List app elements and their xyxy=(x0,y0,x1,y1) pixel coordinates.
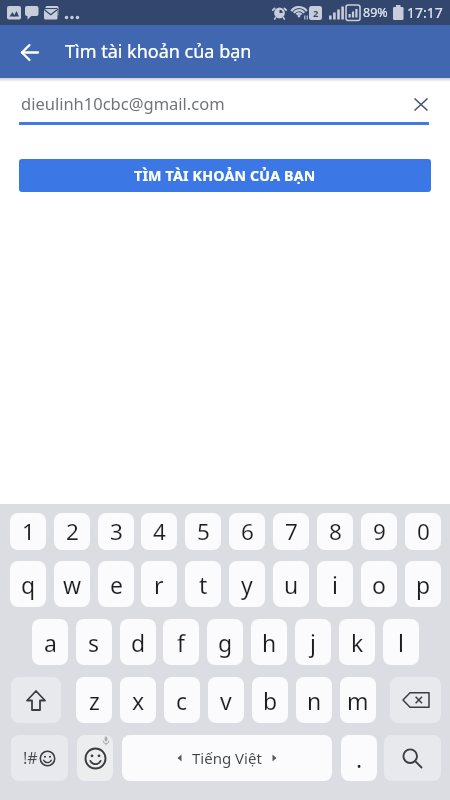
staticText: 17:17 xyxy=(407,3,443,22)
staticText: !# xyxy=(23,747,38,769)
button[interactable]: 9 xyxy=(361,513,397,550)
button[interactable]: u xyxy=(273,561,309,607)
staticText: TÌM TÀI KHOẢN CỦA BẠN xyxy=(134,166,316,185)
staticText: 4 xyxy=(153,516,166,547)
staticText: 89% xyxy=(363,4,388,21)
button[interactable]: TÌM TÀI KHOẢN CỦA BẠN xyxy=(19,159,431,192)
button[interactable]: w xyxy=(54,561,90,607)
button[interactable]: Tiếng Việt xyxy=(122,735,332,781)
button[interactable]: n xyxy=(296,677,332,723)
staticText: 9 xyxy=(373,516,386,547)
button[interactable] xyxy=(390,677,441,723)
staticText: o xyxy=(372,569,386,600)
staticText: e xyxy=(110,569,123,600)
staticText: u xyxy=(284,569,299,600)
button[interactable]: z xyxy=(76,677,112,723)
staticText: p xyxy=(416,569,431,600)
staticText: t xyxy=(199,569,208,600)
staticText: n xyxy=(307,685,322,716)
button[interactable] xyxy=(384,735,441,781)
button[interactable]: 2 xyxy=(54,513,90,550)
staticText: r xyxy=(154,569,164,600)
button[interactable]: . xyxy=(341,735,377,781)
staticText: i xyxy=(332,569,338,600)
staticText: 0 xyxy=(417,516,430,547)
button[interactable]: p xyxy=(405,561,441,607)
button[interactable] xyxy=(405,88,437,120)
staticText: Tiếng Việt xyxy=(192,748,262,768)
button[interactable]: c xyxy=(164,677,200,723)
button[interactable] xyxy=(11,677,61,723)
button[interactable]: e xyxy=(98,561,134,607)
staticText: v xyxy=(220,685,232,716)
button[interactable]: o xyxy=(361,561,397,607)
button[interactable]: 6 xyxy=(229,513,265,550)
staticText: dieulinh10cbc@gmail.com xyxy=(21,92,225,114)
staticText: b xyxy=(263,685,278,716)
button[interactable]: 5 xyxy=(185,513,221,550)
button[interactable]: x xyxy=(120,677,156,723)
staticText: 3 xyxy=(110,516,123,547)
staticText: w xyxy=(63,569,82,600)
staticText: k xyxy=(351,627,364,658)
staticText: 7 xyxy=(285,516,298,547)
button[interactable]: a xyxy=(32,619,68,665)
button[interactable]: !# xyxy=(11,735,68,781)
button[interactable]: d xyxy=(120,619,156,665)
staticText: 1 xyxy=(22,516,35,547)
button[interactable] xyxy=(77,735,113,781)
staticText: j xyxy=(310,627,316,658)
button[interactable]: 1 xyxy=(10,513,46,550)
button[interactable]: f xyxy=(163,619,199,665)
button[interactable]: 8 xyxy=(317,513,353,550)
staticText: 5 xyxy=(197,516,210,547)
staticText: y xyxy=(241,569,253,600)
staticText: 6 xyxy=(241,516,254,547)
button[interactable] xyxy=(10,35,50,69)
button[interactable]: 3 xyxy=(98,513,134,550)
staticText: x xyxy=(132,685,145,716)
staticText: d xyxy=(131,627,146,658)
button[interactable]: 7 xyxy=(273,513,309,550)
button[interactable]: s xyxy=(76,619,112,665)
button[interactable]: l xyxy=(383,619,419,665)
button[interactable]: y xyxy=(229,561,265,607)
staticText: c xyxy=(176,685,188,716)
staticText: l xyxy=(398,627,404,658)
staticText: z xyxy=(89,685,100,716)
staticText: Tìm tài khoản của bạn xyxy=(65,39,252,64)
button[interactable]: k xyxy=(339,619,375,665)
staticText: g xyxy=(218,627,233,658)
staticText: 2 xyxy=(313,7,319,20)
button[interactable]: 4 xyxy=(141,513,177,550)
button[interactable]: m xyxy=(340,677,376,723)
staticText: f xyxy=(177,627,185,658)
button[interactable]: t xyxy=(185,561,221,607)
button[interactable]: 0 xyxy=(405,513,441,550)
staticText: a xyxy=(44,627,57,658)
staticText: q xyxy=(21,569,36,600)
button[interactable]: b xyxy=(252,677,288,723)
button[interactable]: v xyxy=(208,677,244,723)
staticText: 8 xyxy=(329,516,342,547)
button[interactable]: g xyxy=(207,619,243,665)
button[interactable]: r xyxy=(141,561,177,607)
staticText: . xyxy=(356,743,363,774)
staticText: s xyxy=(88,627,100,658)
button[interactable]: q xyxy=(10,561,46,607)
staticText: m xyxy=(347,685,369,716)
button[interactable]: i xyxy=(317,561,353,607)
staticText: 2 xyxy=(66,516,79,547)
button[interactable]: h xyxy=(251,619,287,665)
staticText: h xyxy=(262,627,277,658)
button[interactable]: j xyxy=(295,619,331,665)
